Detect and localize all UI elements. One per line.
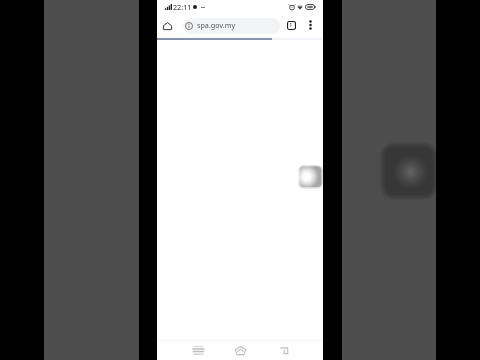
button[interactable]: spa.gov.my xyxy=(183,18,280,34)
button[interactable]: Recent apps xyxy=(189,341,208,360)
staticText: spa.gov.my xyxy=(197,20,236,30)
button[interactable]: Back xyxy=(274,341,293,360)
button[interactable]: More options xyxy=(302,17,318,33)
button[interactable]: Floating shortcut bubble xyxy=(295,160,325,194)
button[interactable]: Status bar xyxy=(157,2,323,12)
staticText: 22:11 xyxy=(173,2,192,12)
staticText: 1 xyxy=(289,21,293,29)
button[interactable]: Switch tabs, 1 open xyxy=(283,17,299,33)
button[interactable]: Home page xyxy=(159,17,176,34)
button[interactable]: Home xyxy=(231,341,250,360)
